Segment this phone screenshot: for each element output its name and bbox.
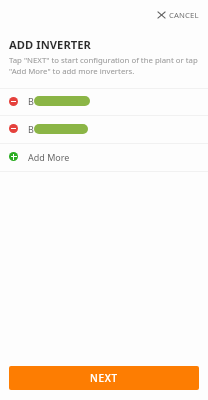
staticText: B [28, 123, 34, 135]
staticText: B [28, 95, 34, 107]
other: Remove inverter [9, 97, 18, 106]
staticText: Tap "NEXT" to start configuration of the… [9, 55, 198, 76]
other: Remove inverter [9, 124, 18, 133]
button[interactable]: CANCEL [150, 0, 208, 29]
button[interactable]: Remove inverter [0, 89, 208, 115]
staticText: CANCEL [169, 10, 199, 20]
staticText: NEXT [90, 371, 118, 385]
button[interactable]: Remove inverter [0, 116, 208, 143]
staticText: ADD INVERTER [9, 37, 92, 52]
button[interactable]: Add More [0, 144, 208, 171]
staticText: Add More [28, 151, 70, 163]
button[interactable]: NEXT [9, 366, 199, 390]
